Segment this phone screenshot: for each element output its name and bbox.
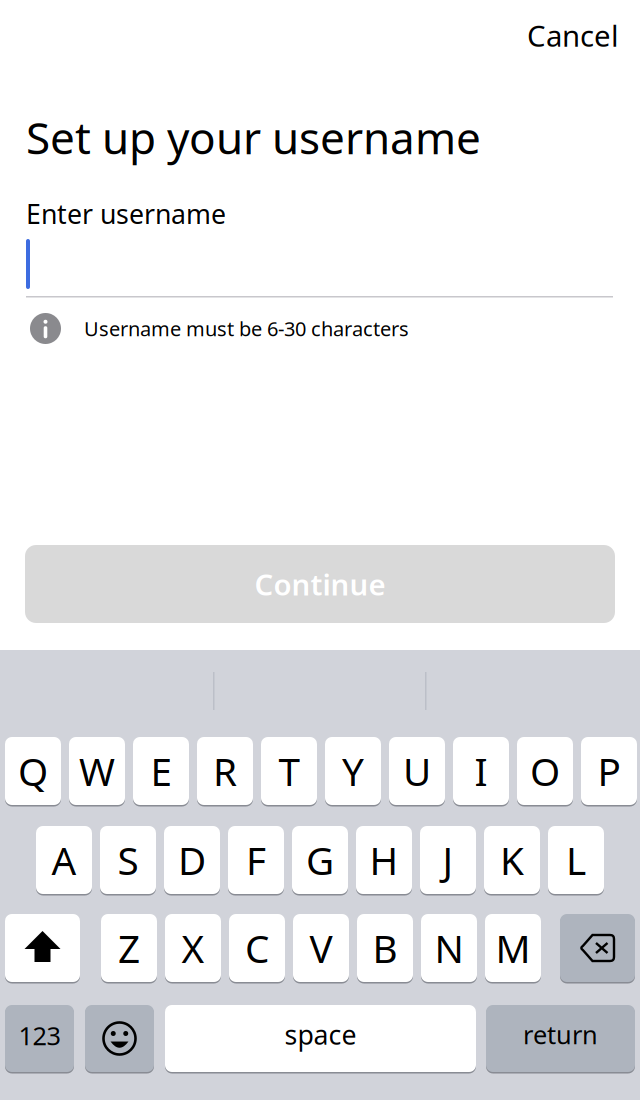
- button[interactable]: D: [164, 826, 220, 895]
- button[interactable]: F: [228, 826, 284, 895]
- button[interactable]: L: [548, 826, 604, 895]
- staticText: H: [369, 834, 398, 886]
- button[interactable]: N: [421, 914, 477, 983]
- staticText: return: [523, 1018, 598, 1051]
- button[interactable]: X: [165, 914, 221, 983]
- button[interactable]: A: [36, 826, 92, 895]
- staticText: J: [442, 834, 453, 886]
- button[interactable]: U: [389, 737, 445, 806]
- button[interactable]: J: [420, 826, 476, 895]
- button[interactable]: Continue: [25, 545, 615, 623]
- staticText: R: [213, 745, 237, 797]
- button[interactable]: Z: [101, 914, 157, 983]
- staticText: A: [51, 834, 76, 886]
- staticText: Enter username: [26, 196, 226, 231]
- button[interactable]: R: [197, 737, 253, 806]
- button[interactable]: Q: [5, 737, 61, 806]
- button[interactable]: G: [292, 826, 348, 895]
- staticText: P: [597, 745, 620, 797]
- button[interactable]: M: [485, 914, 541, 983]
- button[interactable]: T: [261, 737, 317, 806]
- staticText: C: [245, 922, 269, 974]
- staticText: M: [495, 922, 530, 974]
- button[interactable]: 123: [5, 1005, 74, 1073]
- staticText: Z: [118, 922, 140, 974]
- staticText: O: [530, 745, 560, 797]
- button[interactable]: Delete: [560, 914, 635, 983]
- button[interactable]: Username text field: [26, 238, 613, 298]
- button[interactable]: V: [293, 914, 349, 983]
- staticText: N: [434, 922, 463, 974]
- staticText: V: [309, 922, 332, 974]
- button[interactable]: Y: [325, 737, 381, 806]
- button[interactable]: Shift: [5, 914, 80, 983]
- staticText: space: [284, 1017, 356, 1052]
- staticText: U: [403, 745, 431, 797]
- button[interactable]: S: [100, 826, 156, 895]
- staticText: Continue: [254, 564, 385, 603]
- button[interactable]: K: [484, 826, 540, 895]
- staticText: B: [372, 922, 397, 974]
- staticText: X: [181, 922, 204, 974]
- button[interactable]: Cancel: [513, 6, 633, 65]
- staticText: T: [278, 745, 299, 797]
- staticText: G: [306, 834, 334, 886]
- button[interactable]: space: [165, 1005, 476, 1073]
- staticText: W: [79, 745, 115, 797]
- button[interactable]: I: [453, 737, 509, 806]
- staticText: Q: [18, 745, 48, 797]
- staticText: D: [178, 834, 206, 886]
- staticText: Username must be 6-30 characters: [84, 315, 409, 342]
- button[interactable]: B: [357, 914, 413, 983]
- staticText: E: [150, 745, 171, 797]
- staticText: S: [117, 834, 138, 886]
- button[interactable]: Emoji: [85, 1005, 154, 1073]
- staticText: K: [500, 834, 524, 886]
- button[interactable]: O: [517, 737, 573, 806]
- button[interactable]: E: [133, 737, 189, 806]
- button[interactable]: return: [486, 1005, 635, 1073]
- staticText: Cancel: [527, 16, 619, 55]
- button[interactable]: W: [69, 737, 125, 806]
- staticText: L: [566, 834, 586, 886]
- staticText: 123: [18, 1019, 60, 1052]
- button[interactable]: P: [581, 737, 637, 806]
- staticText: Set up your username: [26, 108, 481, 166]
- button[interactable]: C: [229, 914, 285, 983]
- staticText: I: [474, 745, 487, 797]
- staticText: Y: [342, 745, 364, 797]
- staticText: F: [246, 834, 266, 886]
- button[interactable]: H: [356, 826, 412, 895]
